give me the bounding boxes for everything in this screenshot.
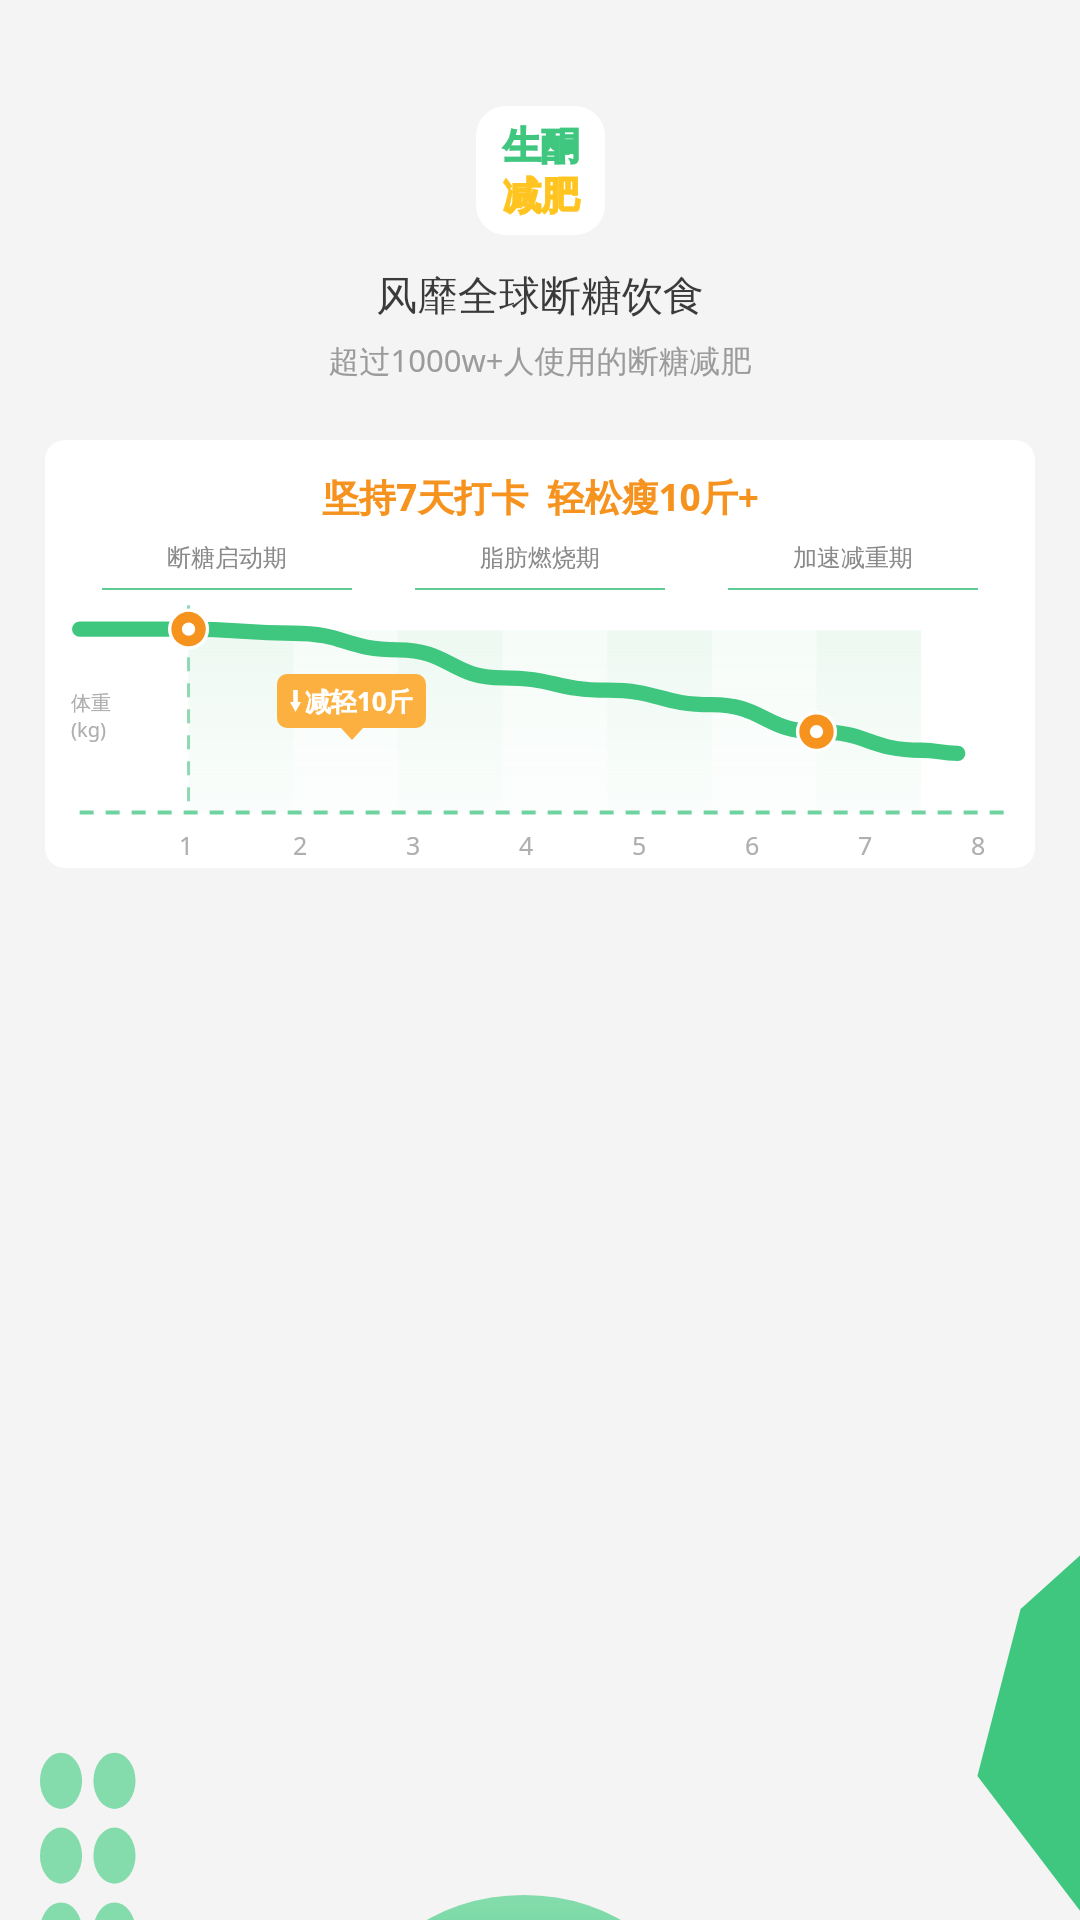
staticText: 5 xyxy=(632,828,647,862)
staticText: 4 xyxy=(519,828,534,862)
staticText: 断糖启动期 xyxy=(167,543,287,573)
staticText: 减肥 xyxy=(503,172,579,220)
staticText: 2 xyxy=(293,828,308,862)
staticText: 超过1000w+人使用的断糖减肥 xyxy=(328,339,752,381)
staticText: 8 xyxy=(971,828,986,862)
staticText: 生酮 xyxy=(503,122,579,170)
button[interactable]: 减轻10斤 xyxy=(277,674,426,728)
staticText: 脂肪燃烧期 xyxy=(480,543,600,573)
button[interactable]: 生酮减肥 App icon xyxy=(476,106,605,235)
staticText: 坚持7天打卡 轻松瘦10斤+ xyxy=(322,471,759,522)
staticText: 6 xyxy=(745,828,760,862)
staticText: 减轻10斤 xyxy=(305,683,413,719)
staticText: 7 xyxy=(858,828,873,862)
staticText: 3 xyxy=(406,828,421,862)
staticText: 1 xyxy=(179,828,194,862)
staticText: 风靡全球断糖饮食 xyxy=(376,271,704,323)
staticText: 加速减重期 xyxy=(793,543,913,573)
staticText: 体重 xyxy=(71,691,111,716)
staticText: (kg) xyxy=(71,716,106,743)
button[interactable]: 坚持7天打卡 轻松瘦10斤+ xyxy=(45,440,1035,868)
